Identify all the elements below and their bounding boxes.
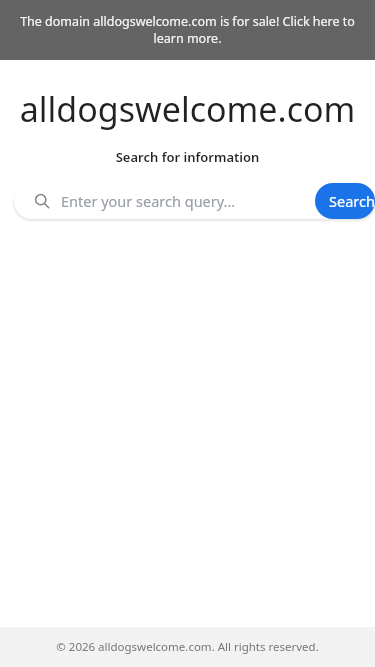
staticText: Search <box>329 191 375 211</box>
button[interactable]: The domain alldogswelcome.com is for sal… <box>0 0 375 60</box>
button[interactable]: Search <box>315 183 375 219</box>
staticText: The domain alldogswelcome.com is for sal… <box>18 13 357 47</box>
staticText: © 2026 alldogswelcome.com. All rights re… <box>0 639 375 655</box>
staticText: alldogswelcome.com <box>0 86 375 132</box>
other: Search <box>34 193 50 209</box>
staticText: Search for information <box>0 148 375 166</box>
staticText: Enter your search query... <box>61 191 236 211</box>
button[interactable]: Search <box>14 183 375 219</box>
